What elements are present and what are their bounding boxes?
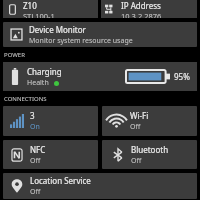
staticText: Z10 [23, 0, 37, 11]
button[interactable]: Bluetooth [102, 140, 197, 169]
staticText: CONNECTIONS [4, 95, 47, 103]
button[interactable]: Device [3, 0, 98, 18]
staticText: 3 [30, 110, 35, 121]
staticText: Off [30, 156, 41, 166]
button[interactable]: Wi-Fi [102, 106, 197, 136]
staticText: Monitor system resource usage [29, 36, 133, 46]
other: Mobile network [10, 114, 24, 128]
staticText: Bluetooth [131, 144, 169, 155]
staticText: Wi-Fi [130, 110, 149, 121]
other: Bluetooth [111, 148, 125, 162]
other: NFC [10, 148, 24, 162]
other: Network [105, 4, 116, 15]
staticText: Location Service [30, 175, 91, 186]
other: Location Service [10, 179, 24, 193]
staticText: Off [131, 156, 142, 166]
other: Device [7, 4, 18, 15]
button[interactable]: NFC [3, 140, 98, 169]
staticText: 95% [174, 71, 190, 82]
staticText: NFC [30, 144, 46, 155]
staticText: On [30, 122, 40, 132]
staticText: STL100-1 [23, 11, 55, 18]
staticText: POWER [4, 51, 25, 59]
staticText: IP Address [121, 0, 161, 11]
staticText: Charging [27, 66, 62, 77]
staticText: Health [27, 78, 49, 88]
other: Battery [10, 68, 20, 85]
button[interactable]: Mobile network [3, 106, 98, 136]
other: Wi-Fi [109, 114, 124, 129]
staticText: Off [130, 122, 141, 132]
staticText: Off [30, 187, 41, 197]
button[interactable]: Network [101, 0, 197, 18]
button[interactable]: Location Service [3, 173, 197, 199]
staticText: 10.3.2.2876 [121, 11, 162, 18]
button[interactable]: Device Monitor [3, 22, 197, 47]
other: Device Monitor [10, 28, 23, 41]
button[interactable]: Battery [3, 62, 197, 91]
staticText: Device Monitor [29, 24, 86, 35]
